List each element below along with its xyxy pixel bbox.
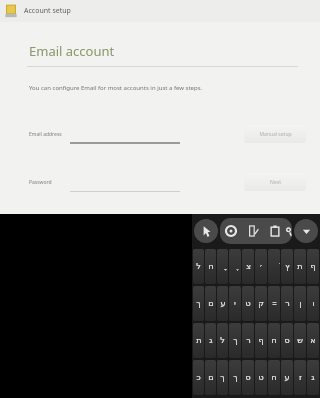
staticText: ג [311, 373, 315, 382]
button[interactable]: ָ [217, 249, 228, 284]
button[interactable]: צ [242, 249, 254, 284]
button[interactable]: ץ [281, 249, 293, 284]
staticText: ר [285, 299, 290, 308]
button[interactable]: ך [229, 360, 241, 395]
button[interactable]: Next [244, 173, 306, 191]
button[interactable]: ת [294, 249, 306, 284]
staticText: ץ [285, 262, 290, 271]
staticText: א [310, 336, 316, 345]
staticText: Email account [29, 42, 115, 60]
staticText: ׳ [259, 262, 263, 271]
staticText: You can configure Email for most account… [29, 84, 203, 92]
button[interactable]: ׁ [268, 249, 280, 284]
button[interactable]: ע [217, 286, 228, 321]
button[interactable] [70, 172, 180, 192]
button[interactable]: ף [255, 323, 267, 358]
button[interactable]: Input method [194, 219, 218, 243]
button[interactable]: ך [193, 286, 204, 321]
button[interactable]: ח [268, 323, 280, 358]
button[interactable]: ף [307, 249, 319, 284]
button[interactable]: ך [217, 360, 228, 395]
staticText: ך [220, 373, 225, 382]
staticText: ת [297, 262, 303, 271]
staticText: ם [208, 373, 214, 382]
button[interactable]: ם [205, 360, 216, 395]
button[interactable]: ת [193, 323, 204, 358]
button[interactable]: ר [281, 286, 293, 321]
staticText: = [272, 298, 277, 309]
staticText: י [234, 299, 236, 308]
button[interactable]: א [307, 323, 319, 358]
staticText: ז [299, 373, 302, 382]
button[interactable]: ט [255, 360, 267, 395]
staticText: ק [258, 299, 264, 308]
button[interactable]: ט [242, 286, 254, 321]
staticText: ג [209, 336, 213, 345]
button[interactable]: ֶ [229, 249, 241, 284]
staticText: צ [246, 262, 251, 271]
button[interactable]: ז [294, 360, 306, 395]
staticText: Account setup [24, 6, 71, 16]
staticText: ל [220, 336, 225, 345]
button[interactable]: ח [268, 360, 280, 395]
button[interactable]: ו [307, 286, 319, 321]
staticText: ף [258, 336, 264, 345]
button[interactable]: ח [205, 249, 216, 284]
button[interactable]: Search [286, 220, 292, 242]
staticText: ת [196, 336, 202, 345]
staticText: ר [246, 336, 251, 345]
staticText: ך [196, 299, 201, 308]
button[interactable]: ך [229, 323, 241, 358]
staticText: ם [208, 299, 214, 308]
staticText: ש [297, 336, 303, 345]
button[interactable]: Clipboard [264, 220, 286, 242]
staticText: ע [220, 299, 226, 308]
staticText: ח [271, 373, 277, 382]
button[interactable]: כ [193, 360, 204, 395]
button[interactable]: ם [205, 286, 216, 321]
button[interactable]: Settings [220, 220, 242, 242]
button[interactable]: ק [255, 286, 267, 321]
button[interactable]: Handwriting [242, 220, 264, 242]
staticText: ן [299, 299, 302, 308]
button[interactable]: Collapse keyboard [294, 219, 318, 243]
button[interactable]: ע [281, 360, 293, 395]
button[interactable]: ג [205, 323, 216, 358]
staticText: ע [284, 373, 290, 382]
button[interactable]: = [268, 286, 280, 321]
staticText: ף [310, 262, 316, 271]
button[interactable]: י [229, 286, 241, 321]
staticText: ט [245, 299, 251, 308]
button[interactable]: ן [294, 286, 306, 321]
staticText: Email address [29, 131, 62, 138]
button[interactable]: ר [242, 323, 254, 358]
button[interactable] [70, 124, 180, 144]
staticText: Manual setup [259, 131, 292, 138]
staticText: ס [245, 373, 251, 382]
staticText: ח [208, 262, 214, 271]
staticText: ך [233, 336, 238, 345]
button[interactable]: ש [294, 323, 306, 358]
staticText: ו [312, 299, 315, 308]
staticText: Next [270, 179, 281, 186]
button[interactable]: ס [281, 323, 293, 358]
staticText: ך [233, 373, 238, 382]
button[interactable]: ל [193, 249, 204, 284]
staticText: כ [196, 373, 201, 382]
staticText: ל [196, 262, 201, 271]
button[interactable]: ׳ [255, 249, 267, 284]
button[interactable]: Manual setup [244, 125, 306, 143]
staticText: ח [271, 336, 277, 345]
button[interactable]: ל [217, 323, 228, 358]
other: Email app icon [4, 4, 18, 18]
button[interactable]: ג [307, 360, 319, 395]
staticText: ט [258, 373, 264, 382]
button[interactable]: ס [242, 360, 254, 395]
staticText: Password [29, 179, 52, 186]
staticText: ס [284, 336, 290, 345]
